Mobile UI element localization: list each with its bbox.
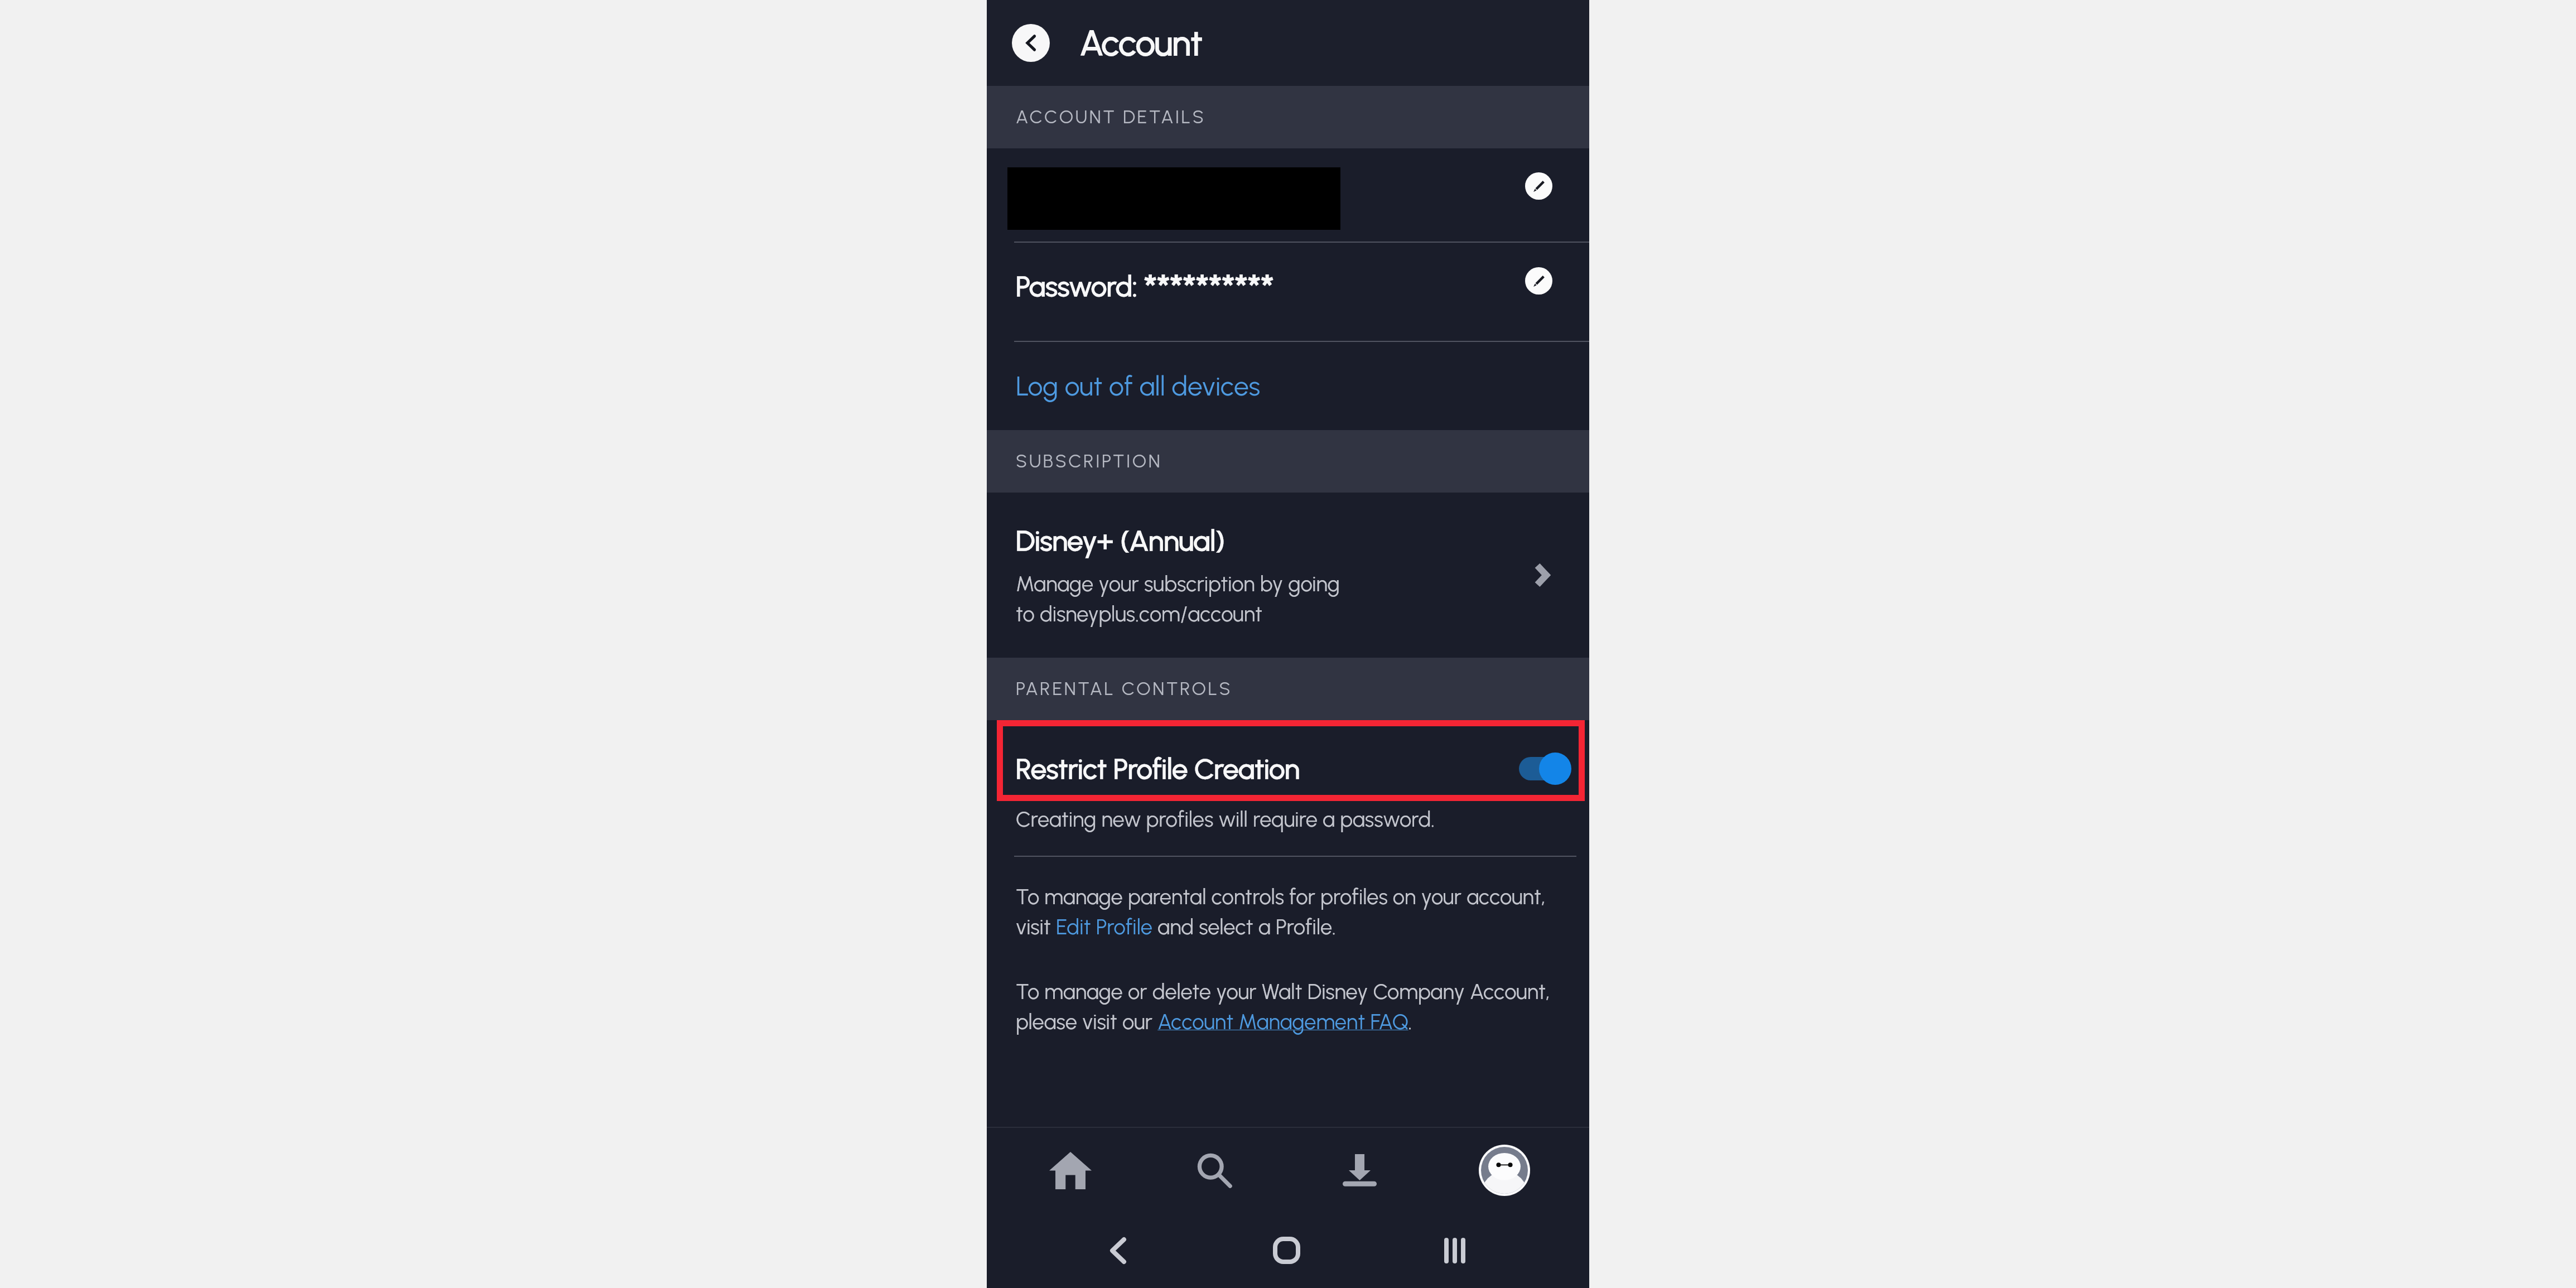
staticText: ACCOUNT DETAILS bbox=[1016, 106, 1206, 128]
staticText: PARENTAL CONTROLS bbox=[1016, 678, 1233, 700]
button[interactable]: Home bbox=[1219, 1213, 1353, 1288]
staticText: Account bbox=[1080, 22, 1203, 64]
button[interactable]: Back bbox=[1051, 1213, 1185, 1288]
staticText: To manage or delete your Walt Disney Com… bbox=[1016, 979, 1550, 1034]
staticText: To manage parental controls for profiles… bbox=[1016, 884, 1546, 939]
button[interactable]: Log out of all devices bbox=[987, 342, 1589, 430]
button[interactable]: Search bbox=[1142, 1128, 1287, 1213]
button[interactable]: Downloads bbox=[1287, 1128, 1432, 1213]
button[interactable]: Home bbox=[998, 1128, 1142, 1213]
staticText: Disney+ (Annual) bbox=[1016, 524, 1225, 558]
staticText: SUBSCRIPTION bbox=[1016, 450, 1162, 472]
staticText: Creating new profiles will require a pas… bbox=[1016, 807, 1435, 832]
button[interactable]: Back bbox=[1012, 24, 1050, 62]
button[interactable]: Disney+ (Annual) bbox=[987, 493, 1589, 658]
staticText: Password: ********** bbox=[1016, 266, 1274, 310]
staticText: Restrict Profile Creation bbox=[1016, 752, 1300, 785]
button[interactable]: Edit bbox=[1525, 172, 1552, 200]
staticText: Manage your subscription by going to dis… bbox=[1016, 571, 1340, 626]
button[interactable]: Recents bbox=[1388, 1213, 1522, 1288]
staticText: Log out of all devices bbox=[1016, 370, 1261, 402]
button[interactable]: Edit bbox=[1525, 267, 1552, 295]
button[interactable]: Restrict Profile Creation bbox=[987, 720, 1589, 801]
button[interactable]: Restrict profile creation toggle bbox=[1519, 752, 1571, 785]
button[interactable]: Profile bbox=[1432, 1128, 1577, 1213]
